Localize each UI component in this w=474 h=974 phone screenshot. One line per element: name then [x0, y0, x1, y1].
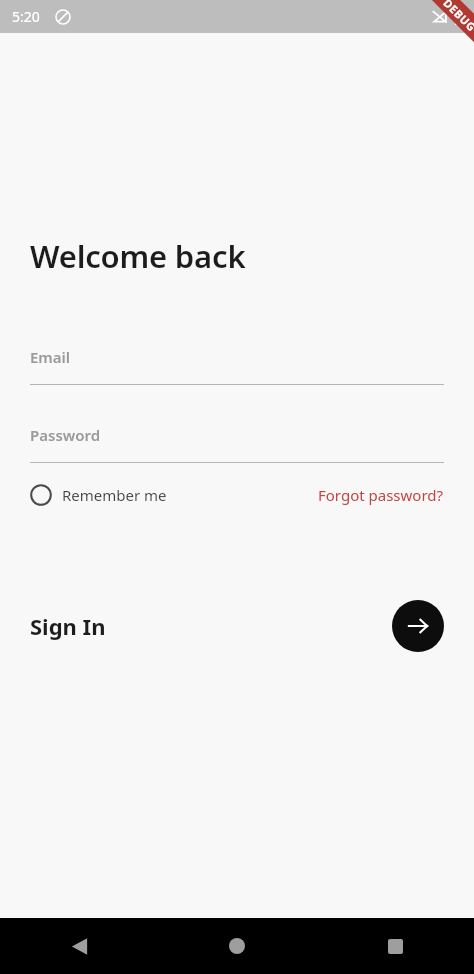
staticText: Email — [30, 347, 71, 367]
button[interactable]: Back — [0, 918, 158, 974]
button[interactable]: Remember me — [30, 484, 167, 506]
button[interactable]: Password — [30, 425, 444, 463]
button[interactable]: Home — [158, 918, 316, 974]
staticText: Sign In — [30, 611, 106, 641]
button[interactable]: Email — [30, 347, 444, 385]
button[interactable]: Forgot password? — [318, 485, 444, 505]
staticText: Password — [30, 425, 101, 445]
staticText: DEBUG — [440, 0, 474, 34]
button[interactable]: Sign In — [392, 600, 444, 652]
button[interactable]: Recent apps — [316, 918, 474, 974]
staticText: Remember me — [62, 485, 167, 505]
staticText: Forgot password? — [318, 485, 444, 505]
staticText: Welcome back — [30, 235, 246, 277]
staticText: 5:20 — [12, 7, 40, 26]
button[interactable]: Sign In — [30, 611, 106, 641]
